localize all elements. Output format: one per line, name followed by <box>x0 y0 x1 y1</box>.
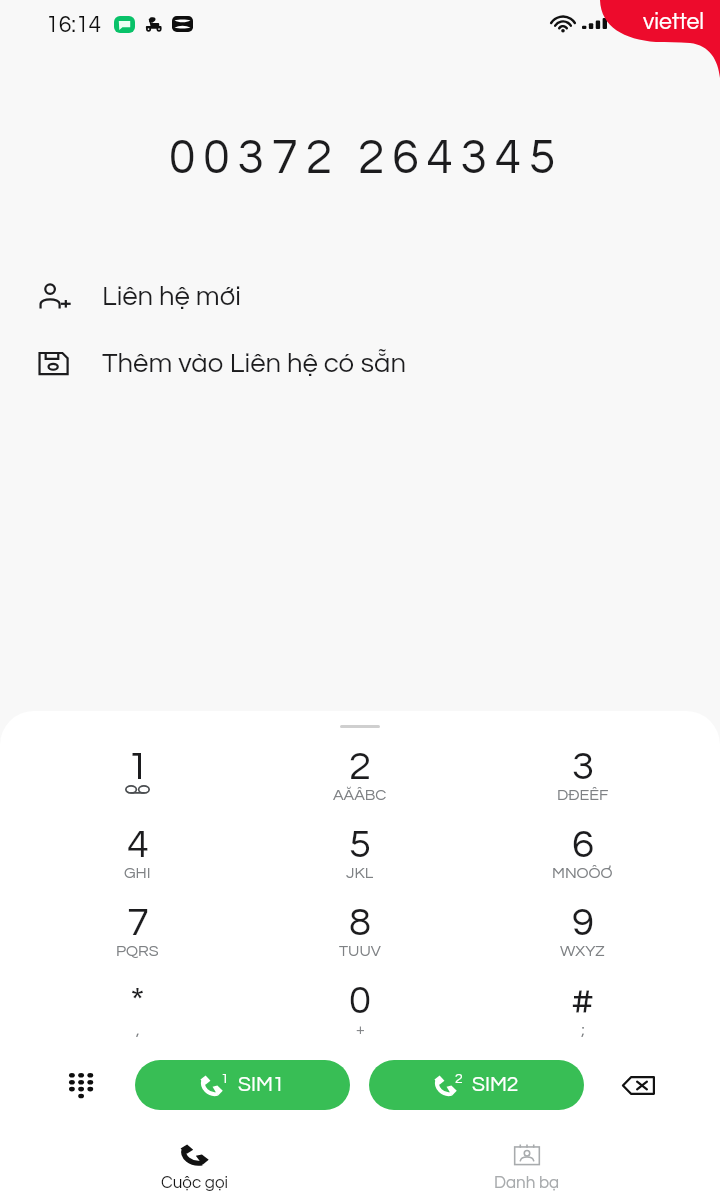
button[interactable]: 0 <box>248 968 471 1046</box>
button[interactable]: 1 <box>26 734 248 812</box>
staticText: WXYZ <box>560 943 605 959</box>
staticText: 8 <box>349 902 371 943</box>
staticText: + <box>356 1021 365 1037</box>
button[interactable]: Thêm vào Liên hệ có sẵn <box>0 339 720 387</box>
staticText: * <box>130 981 145 1022</box>
staticText: 6 <box>572 824 594 865</box>
button[interactable]: Backspace <box>608 1058 668 1112</box>
staticText: ; <box>581 1022 585 1038</box>
staticText: viettel <box>643 10 705 34</box>
staticText: Cuộc gọi <box>161 1174 228 1192</box>
staticText: Danh bạ <box>494 1174 560 1192</box>
staticText: 00372 264345 <box>169 134 564 183</box>
button[interactable]: * <box>26 968 248 1046</box>
staticText: Liên hệ mới <box>102 282 241 310</box>
button[interactable]: 1 <box>135 1060 350 1110</box>
button[interactable]: Dialpad <box>48 1058 112 1112</box>
staticText: 5 <box>349 824 371 865</box>
staticText: DĐEÊF <box>557 787 609 803</box>
button[interactable]: 5 <box>248 812 471 890</box>
staticText: SIM2 <box>472 1074 519 1096</box>
staticText: PQRS <box>116 943 159 959</box>
staticText: , <box>136 1022 140 1038</box>
button[interactable]: Liên hệ mới <box>0 272 720 320</box>
staticText: 0 <box>349 980 371 1021</box>
button[interactable]: 7 <box>26 890 248 968</box>
staticText: 16:14 <box>46 13 102 37</box>
button[interactable]: 9 <box>471 890 694 968</box>
staticText: # <box>571 981 595 1022</box>
staticText: MNOÔƠ <box>552 865 613 881</box>
button[interactable]: 3 <box>471 734 694 812</box>
staticText: GHI <box>124 865 151 881</box>
staticText: 1 <box>127 746 149 787</box>
staticText: 3 <box>572 746 594 787</box>
staticText: 2 <box>455 1072 463 1086</box>
staticText: TUUV <box>339 943 381 959</box>
staticText: 7 <box>127 902 149 943</box>
button[interactable]: # <box>471 968 694 1046</box>
button[interactable]: 4 <box>26 812 248 890</box>
button[interactable]: 6 <box>471 812 694 890</box>
staticText: JKL <box>346 865 374 881</box>
button[interactable]: Cuộc gọi <box>114 1144 274 1200</box>
staticText: 4 <box>127 824 149 865</box>
staticText: SIM1 <box>238 1074 285 1096</box>
button[interactable]: 8 <box>248 890 471 968</box>
staticText: 9 <box>572 902 594 943</box>
staticText: 2 <box>349 746 371 787</box>
staticText: AĂÂBC <box>333 787 387 803</box>
button[interactable]: 2 <box>369 1060 584 1110</box>
staticText: Thêm vào Liên hệ có sẵn <box>102 349 406 377</box>
button[interactable]: Danh bạ <box>447 1144 607 1200</box>
button[interactable]: 2 <box>248 734 471 812</box>
staticText: 1 <box>221 1072 229 1086</box>
